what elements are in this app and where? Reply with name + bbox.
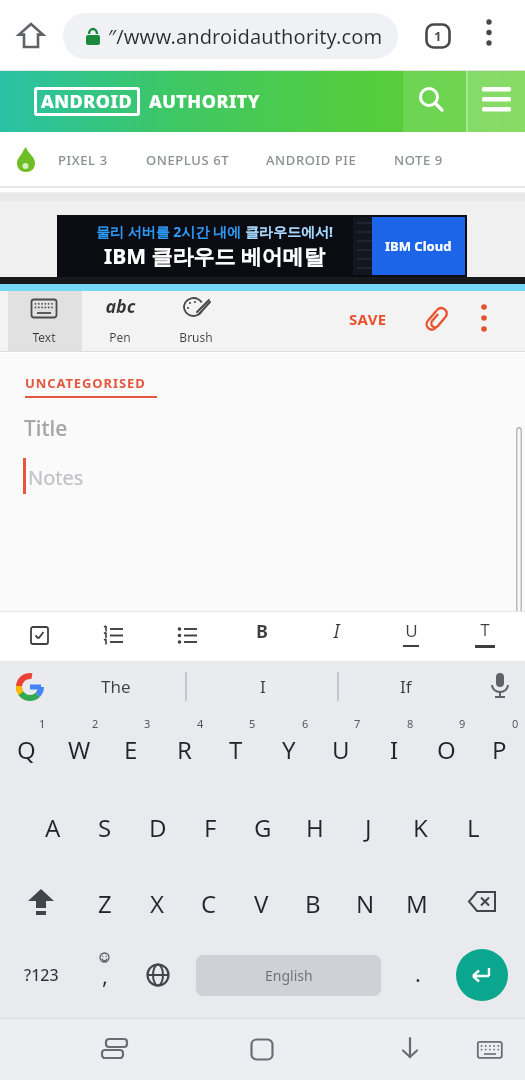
button[interactable] <box>183 297 211 319</box>
button[interactable]: O <box>420 712 472 786</box>
staticText: 9 <box>459 716 466 731</box>
staticText: L <box>467 811 480 844</box>
button[interactable]: T <box>210 712 262 786</box>
staticText: IBM Cloud <box>385 237 452 255</box>
button[interactable]: H <box>289 790 341 864</box>
staticText: Text <box>32 329 56 345</box>
staticText: 8 <box>407 716 414 731</box>
button[interactable]: The <box>68 661 163 712</box>
button[interactable] <box>399 1037 421 1061</box>
staticText: 5 <box>249 716 256 731</box>
button[interactable] <box>103 626 124 647</box>
button[interactable]: S <box>79 790 131 864</box>
staticText: ?123 <box>24 964 59 986</box>
button[interactable] <box>27 889 55 915</box>
button[interactable] <box>8 291 82 352</box>
button[interactable]: C <box>183 866 235 940</box>
staticText: PIXEL 3 <box>58 151 108 169</box>
button[interactable]: F <box>184 790 236 864</box>
button[interactable] <box>468 891 498 913</box>
staticText: 1 <box>39 716 46 731</box>
button[interactable] <box>468 71 525 132</box>
button[interactable]: X <box>131 866 183 940</box>
button[interactable] <box>250 1038 274 1060</box>
button[interactable]: ″/www.androidauthority.com <box>63 13 398 59</box>
button[interactable] <box>489 672 511 702</box>
button[interactable] <box>30 626 50 646</box>
button[interactable] <box>146 963 170 987</box>
staticText: . <box>415 958 421 988</box>
staticText: ANDROID <box>41 89 133 114</box>
staticText: B <box>305 887 321 920</box>
button[interactable] <box>478 16 500 56</box>
button[interactable]: U <box>315 712 367 786</box>
staticText: , <box>102 960 108 990</box>
button[interactable]: Y <box>263 712 315 786</box>
button[interactable]: K <box>394 790 446 864</box>
staticText: N <box>356 887 375 920</box>
staticText: 1 <box>434 27 442 45</box>
staticText: O <box>437 733 456 766</box>
button[interactable]: ?123 <box>10 940 72 1010</box>
staticText: B <box>256 619 268 644</box>
button[interactable]: V <box>235 866 287 940</box>
button[interactable]: I <box>215 661 310 712</box>
staticText: Brush <box>179 329 213 345</box>
button[interactable]: ANDROID PIE <box>266 132 357 188</box>
button[interactable]: . <box>395 940 441 1006</box>
staticText: 클라우드에서! <box>245 222 333 241</box>
button[interactable]: 물리 서버를 2시간 내에 <box>57 215 467 277</box>
staticText: T <box>229 733 243 766</box>
button[interactable]: R <box>158 712 210 786</box>
button[interactable]: J <box>342 790 394 864</box>
button[interactable]: W <box>53 712 105 786</box>
button[interactable]: English <box>196 955 381 996</box>
button[interactable]: UNCATEGORISED <box>25 374 146 392</box>
button[interactable] <box>403 71 466 132</box>
button[interactable]: SAVE <box>338 288 398 349</box>
staticText: 4 <box>197 716 204 731</box>
button[interactable]: PIXEL 3 <box>58 132 108 188</box>
button[interactable]: I <box>368 712 420 786</box>
button[interactable]: ONEPLUS 6T <box>146 132 230 188</box>
button[interactable]: P <box>473 712 525 786</box>
staticText: P <box>492 733 507 766</box>
button[interactable]: , <box>80 940 130 1010</box>
staticText: H <box>306 811 324 844</box>
button[interactable]: M <box>391 866 443 940</box>
staticText: English <box>265 966 313 985</box>
button[interactable] <box>17 22 45 50</box>
button[interactable]: B <box>287 866 339 940</box>
button[interactable]: If <box>358 661 453 712</box>
staticText: U <box>405 619 418 642</box>
button[interactable]: N <box>339 866 391 940</box>
staticText: Q <box>17 733 36 766</box>
button[interactable]: A <box>27 790 79 864</box>
staticText: Notes <box>28 464 84 491</box>
staticText: 7 <box>354 716 361 731</box>
staticText: Title <box>24 414 68 443</box>
staticText: W <box>68 733 91 766</box>
staticText: I <box>333 618 340 644</box>
staticText: ″/www.androidauthority.com <box>108 23 383 50</box>
staticText: G <box>254 811 272 844</box>
button[interactable]: D <box>132 790 184 864</box>
button[interactable] <box>474 303 494 339</box>
button[interactable]: Q <box>0 712 52 786</box>
staticText: D <box>149 811 167 844</box>
button[interactable] <box>456 949 508 1001</box>
button[interactable]: Z <box>79 866 131 940</box>
button[interactable] <box>424 305 451 334</box>
button[interactable] <box>101 1038 129 1060</box>
button[interactable]: G <box>237 790 289 864</box>
button[interactable] <box>177 626 198 647</box>
staticText: 6 <box>302 716 309 731</box>
button[interactable]: 1 <box>424 22 452 50</box>
button[interactable]: L <box>447 790 499 864</box>
button[interactable] <box>477 1041 503 1059</box>
staticText: J <box>365 811 372 844</box>
button[interactable]: NOTE 9 <box>394 132 443 188</box>
button[interactable]: E <box>105 712 157 786</box>
button[interactable] <box>15 672 45 702</box>
staticText: A <box>45 811 61 844</box>
